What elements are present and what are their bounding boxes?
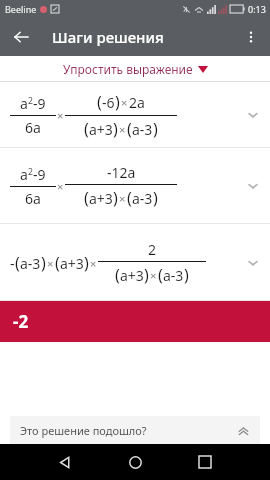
staticText: a+3: [89, 189, 113, 208]
staticText: a+3: [60, 254, 84, 273]
staticText: 2: [28, 95, 33, 107]
staticText: ×: [121, 95, 128, 110]
button[interactable]: a: [0, 148, 270, 224]
staticText: (: [15, 252, 20, 274]
staticText: -9: [33, 165, 46, 184]
staticText: ): [184, 264, 189, 286]
staticText: ): [113, 118, 118, 140]
staticText: ×: [57, 108, 64, 123]
staticText: (: [84, 187, 89, 209]
button[interactable]: Expand step: [246, 256, 260, 270]
staticText: a-3: [20, 254, 41, 273]
staticText: ): [153, 187, 158, 209]
staticText: ×: [47, 256, 54, 271]
staticText: 0:13: [248, 3, 266, 15]
button[interactable]: Recent apps: [192, 449, 218, 475]
staticText: (: [127, 187, 132, 209]
staticText: (: [115, 264, 120, 286]
button[interactable]: -2: [0, 301, 270, 342]
staticText: a-3: [132, 120, 153, 139]
staticText: -12a: [107, 163, 136, 182]
staticText: 2: [148, 240, 157, 259]
staticText: ×: [119, 122, 126, 137]
staticText: 6a: [25, 189, 41, 208]
staticText: ): [41, 252, 46, 274]
staticText: 2: [28, 166, 33, 178]
staticText: ×: [57, 179, 64, 194]
staticText: (: [158, 264, 163, 286]
staticText: -9: [33, 94, 46, 113]
button[interactable]: Это решение подошло?: [10, 416, 260, 444]
button[interactable]: Expand step: [246, 179, 260, 193]
staticText: a+3: [120, 266, 144, 285]
staticText: (: [55, 252, 60, 274]
staticText: ): [115, 91, 120, 113]
staticText: Это решение подошло?: [20, 423, 147, 438]
staticText: a: [20, 165, 28, 184]
staticText: ): [153, 118, 158, 140]
staticText: Упростить выражение: [63, 61, 193, 77]
button[interactable]: Expand feedback: [236, 423, 251, 438]
button[interactable]: Back: [52, 449, 78, 475]
staticText: a+3: [89, 120, 113, 139]
staticText: Beeline: [5, 3, 37, 15]
button[interactable]: -: [0, 224, 270, 301]
staticText: a-3: [132, 189, 153, 208]
staticText: -: [10, 254, 15, 273]
button[interactable]: Expand step: [246, 108, 260, 122]
staticText: 2a: [129, 93, 145, 112]
staticText: ×: [150, 268, 157, 283]
staticText: ): [144, 264, 149, 286]
staticText: ×: [90, 256, 97, 271]
staticText: a-3: [163, 266, 184, 285]
button[interactable]: More options: [238, 24, 264, 50]
button[interactable]: Home: [122, 449, 148, 475]
staticText: (: [127, 118, 132, 140]
staticText: a: [20, 94, 28, 113]
staticText: (: [84, 118, 89, 140]
staticText: -2: [13, 310, 29, 333]
staticText: Шаги решения: [52, 27, 164, 47]
button[interactable]: Упростить выражение: [0, 56, 270, 82]
button[interactable]: a: [0, 82, 270, 148]
button[interactable]: Back: [8, 24, 34, 50]
staticText: 6a: [25, 118, 41, 137]
staticText: (: [97, 91, 102, 113]
staticText: ): [113, 187, 118, 209]
staticText: -6: [102, 93, 115, 112]
staticText: ): [84, 252, 89, 274]
staticText: ×: [119, 191, 126, 206]
